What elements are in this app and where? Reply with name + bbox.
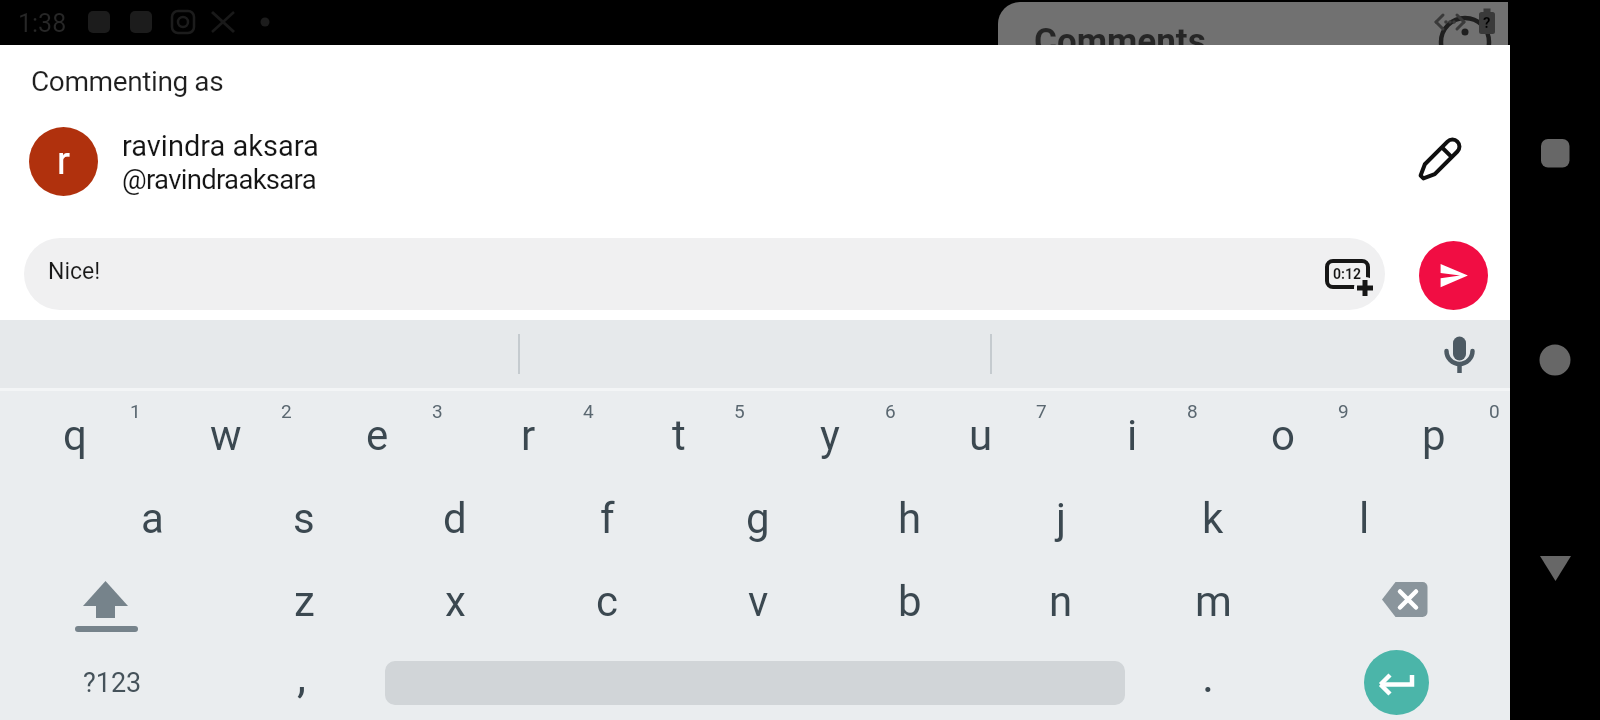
button[interactable]: q: [5, 394, 145, 476]
button[interactable]: f: [537, 477, 677, 559]
staticText: 9: [1338, 400, 1349, 422]
button[interactable]: s: [234, 477, 374, 559]
button[interactable]: r: [29, 127, 98, 196]
button[interactable]: l: [1294, 477, 1434, 559]
button[interactable]: c: [537, 560, 677, 642]
staticText: Nice!: [48, 258, 101, 285]
staticText: ravindra aksara: [122, 129, 319, 163]
button[interactable]: z: [234, 560, 374, 642]
button[interactable]: m: [1143, 560, 1283, 642]
staticText: c: [596, 577, 618, 626]
staticText: l: [1359, 494, 1370, 543]
button[interactable]: [70, 565, 145, 640]
staticText: m: [1195, 577, 1232, 626]
button[interactable]: a: [82, 477, 222, 559]
button[interactable]: j: [991, 477, 1131, 559]
button[interactable]: x: [385, 560, 525, 642]
staticText: z: [294, 577, 315, 626]
staticText: 8: [1187, 400, 1198, 422]
button[interactable]: ?123: [37, 643, 187, 720]
button[interactable]: r: [458, 394, 598, 476]
staticText: h: [898, 494, 922, 543]
staticText: u: [969, 411, 993, 460]
staticText: 1:38: [18, 9, 67, 38]
button[interactable]: p: [1364, 394, 1504, 476]
staticText: 6: [885, 400, 896, 422]
button[interactable]: d: [385, 477, 525, 559]
button[interactable]: [1410, 131, 1468, 189]
button[interactable]: v: [688, 560, 828, 642]
staticText: j: [1056, 494, 1067, 543]
button[interactable]: Nice!: [24, 238, 1385, 310]
button[interactable]: n: [991, 560, 1131, 642]
button[interactable]: t: [609, 394, 749, 476]
button[interactable]: u: [911, 394, 1051, 476]
staticText: b: [898, 577, 922, 626]
staticText: r: [57, 139, 70, 184]
button[interactable]: y: [760, 394, 900, 476]
button[interactable]: [1432, 327, 1487, 382]
staticText: 1: [130, 400, 141, 422]
staticText: 5: [734, 400, 745, 422]
button[interactable]: [1364, 650, 1429, 715]
button[interactable]: i: [1062, 394, 1202, 476]
staticText: a: [141, 494, 164, 543]
staticText: 3: [432, 400, 443, 422]
staticText: f: [600, 494, 615, 543]
staticText: q: [63, 411, 87, 460]
staticText: e: [366, 411, 389, 460]
button[interactable]: .: [1168, 636, 1248, 716]
staticText: 4: [583, 400, 594, 422]
button[interactable]: [1527, 125, 1583, 181]
staticText: d: [443, 494, 467, 543]
staticText: r: [521, 411, 536, 460]
staticText: .: [1202, 649, 1215, 703]
button[interactable]: w: [156, 394, 296, 476]
button[interactable]: e: [307, 394, 447, 476]
staticText: Commenting as: [31, 65, 224, 98]
staticText: x: [445, 577, 466, 626]
staticText: w: [210, 411, 242, 460]
staticText: y: [820, 411, 840, 460]
staticText: ?123: [83, 667, 142, 699]
staticText: k: [1202, 494, 1224, 543]
staticText: g: [746, 494, 770, 543]
staticText: 7: [1036, 400, 1047, 422]
button[interactable]: [1419, 241, 1488, 310]
button[interactable]: [1527, 540, 1583, 596]
staticText: @ravindraaksara: [122, 163, 316, 195]
staticText: ,: [297, 649, 307, 703]
staticText: 0:12: [1333, 266, 1362, 282]
staticText: 2: [281, 400, 292, 422]
button[interactable]: b: [840, 560, 980, 642]
staticText: 0: [1489, 400, 1500, 422]
button[interactable]: g: [688, 477, 828, 559]
staticText: n: [1049, 577, 1073, 626]
staticText: s: [293, 494, 315, 543]
button[interactable]: [1320, 252, 1378, 300]
staticText: v: [748, 577, 769, 626]
staticText: ?: [1483, 14, 1491, 32]
staticText: t: [672, 411, 686, 460]
button[interactable]: o: [1213, 394, 1353, 476]
staticText: i: [1127, 411, 1138, 460]
staticText: p: [1422, 411, 1446, 460]
button[interactable]: h: [840, 477, 980, 559]
staticText: o: [1271, 411, 1295, 460]
button[interactable]: [1527, 332, 1583, 388]
staticText: Comments: [1034, 21, 1206, 45]
button[interactable]: k: [1143, 477, 1283, 559]
button[interactable]: [1370, 565, 1440, 635]
button[interactable]: ,: [262, 636, 342, 716]
